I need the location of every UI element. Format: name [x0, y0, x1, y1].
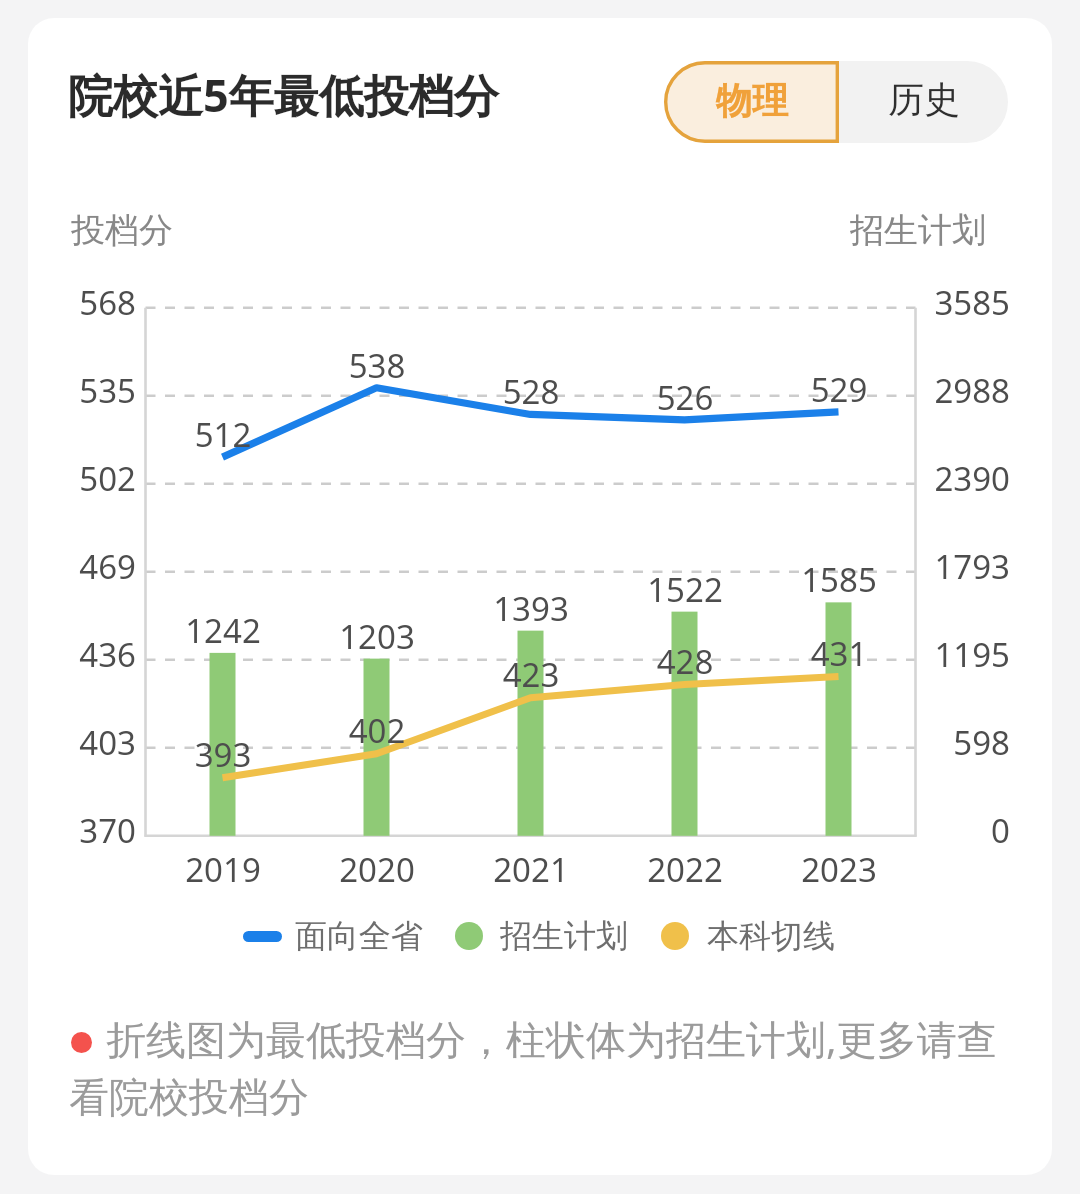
staticText: 598: [918, 720, 1010, 766]
staticText: 2023: [769, 847, 909, 895]
staticText: 526: [615, 375, 755, 421]
staticText: 370: [40, 808, 136, 854]
button[interactable]: 物理: [664, 61, 839, 143]
button[interactable]: 提示: [60, 1000, 1020, 1150]
staticText: 面向全省: [295, 916, 423, 956]
staticText: 502: [40, 456, 136, 502]
staticText: 1203: [297, 614, 457, 660]
staticText: 本科切线: [707, 916, 835, 956]
staticText: 529: [769, 367, 909, 413]
staticText: 528: [461, 369, 601, 415]
staticText: 2020: [307, 847, 447, 895]
staticText: 535: [40, 368, 136, 414]
staticText: 431: [769, 631, 909, 677]
staticText: 1393: [451, 586, 611, 632]
staticText: 0: [918, 808, 1010, 854]
staticText: 2022: [615, 847, 755, 895]
staticText: 2019: [153, 847, 293, 895]
staticText: 428: [615, 639, 755, 685]
staticText: 2988: [918, 368, 1010, 414]
staticText: 投档分: [71, 209, 173, 252]
other: 提示: [71, 1032, 92, 1053]
staticText: 1793: [918, 544, 1010, 590]
staticText: 402: [307, 708, 447, 754]
staticText: 1585: [759, 557, 919, 603]
staticText: 折线图为最低投档分，柱状体为招生计划,更多请查看院校投档分: [69, 1011, 1014, 1151]
staticText: 招生计划: [500, 916, 628, 956]
staticText: 538: [307, 343, 447, 389]
button[interactable]: 本科切线: [653, 908, 845, 958]
staticText: 历史: [888, 77, 960, 122]
button[interactable]: 面向全省: [235, 908, 427, 958]
staticText: 1195: [918, 632, 1010, 678]
button[interactable]: 历史: [839, 61, 1008, 143]
staticText: 403: [40, 720, 136, 766]
staticText: 物理: [716, 78, 788, 123]
staticText: 3585: [918, 280, 1010, 326]
staticText: 1522: [605, 567, 765, 613]
staticText: 393: [153, 732, 293, 778]
staticText: 1242: [143, 608, 303, 654]
staticText: 568: [40, 280, 136, 326]
staticText: 423: [461, 652, 601, 698]
staticText: 院校近5年最低投档分: [68, 64, 608, 132]
staticText: 2390: [918, 456, 1010, 502]
button[interactable]: 招生计划: [447, 908, 639, 958]
staticText: 512: [153, 412, 293, 458]
staticText: 436: [40, 632, 136, 678]
staticText: 2021: [461, 847, 601, 895]
staticText: 469: [40, 544, 136, 590]
staticText: 招生计划: [850, 209, 986, 252]
